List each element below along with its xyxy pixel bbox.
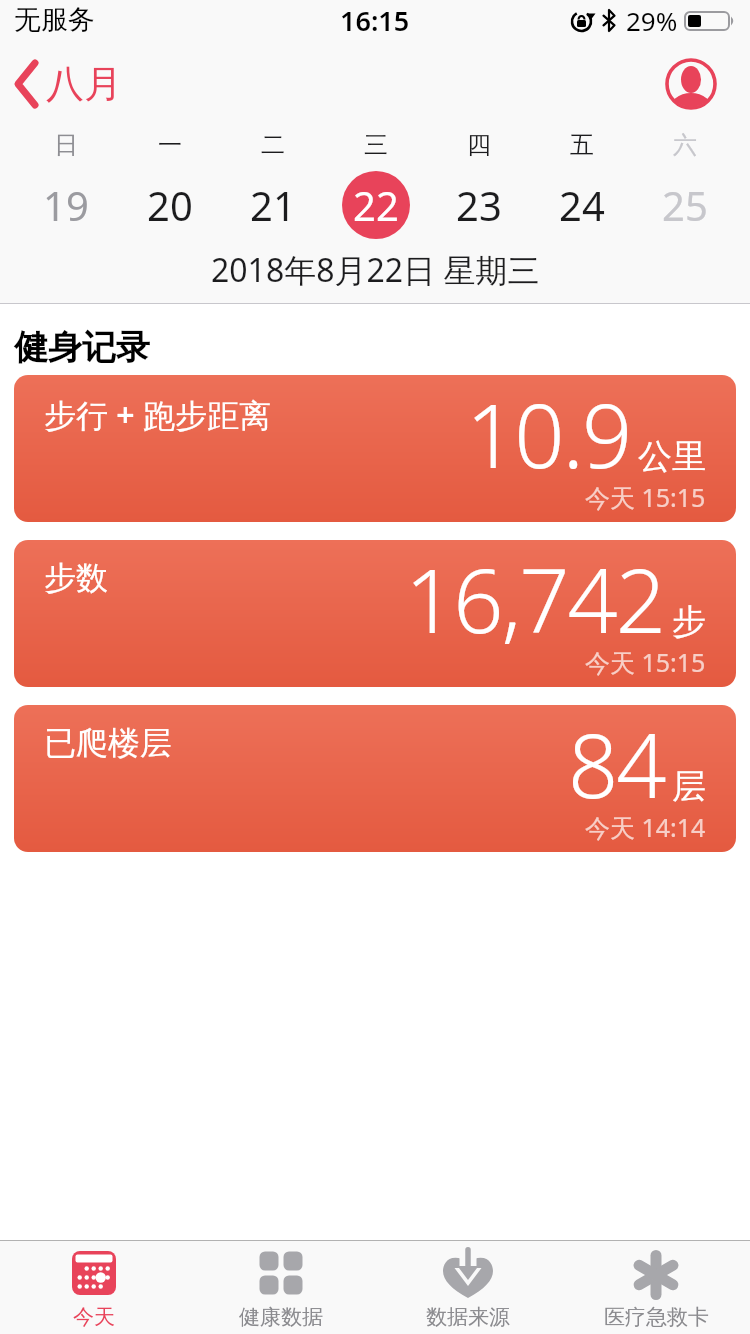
button[interactable]: 八月 <box>14 60 122 108</box>
staticText: 今天 15:15 <box>585 645 706 679</box>
staticText: 步行 + 跑步距离 <box>44 393 271 437</box>
staticText: 医疗急救卡 <box>604 1304 709 1330</box>
staticText: 三 <box>364 130 388 160</box>
staticText: 今天 15:15 <box>585 480 706 514</box>
staticText: 22 <box>353 178 399 232</box>
staticText: 二 <box>261 130 285 160</box>
staticText: 19 <box>43 178 89 232</box>
staticText: 今天 <box>73 1304 115 1330</box>
staticText: 16:15 <box>340 2 410 39</box>
staticText: 五 <box>570 130 594 160</box>
staticText: 健康数据 <box>239 1304 323 1330</box>
staticText: 一 <box>158 130 182 160</box>
staticText: 20 <box>147 178 193 232</box>
staticText: 已爬楼层 <box>44 723 172 763</box>
button[interactable]: 数据来源 <box>374 1241 562 1334</box>
staticText: 21 <box>250 178 296 232</box>
button[interactable]: 21 <box>239 171 307 239</box>
staticText: 16,742 <box>405 540 665 659</box>
staticText: 健身记录 <box>14 326 150 369</box>
button[interactable]: 健康数据 <box>187 1241 374 1334</box>
staticText: 84 <box>568 705 665 824</box>
staticText: 今天 14:14 <box>585 810 706 844</box>
button[interactable]: 24 <box>548 171 616 239</box>
button[interactable]: 医疗急救卡 <box>562 1241 750 1334</box>
staticText: 23 <box>456 178 502 232</box>
button[interactable]: 今天 <box>0 1241 187 1334</box>
staticText: 步数 <box>44 558 108 598</box>
staticText: 24 <box>559 178 605 232</box>
button[interactable]: 20 <box>136 171 204 239</box>
button[interactable]: 19 <box>32 171 100 239</box>
staticText: 日 <box>54 130 78 160</box>
staticText: 六 <box>673 130 697 160</box>
staticText: 公里 <box>638 435 706 478</box>
button[interactable]: 23 <box>445 171 513 239</box>
staticText: 无服务 <box>14 3 95 37</box>
button[interactable]: 步数 <box>14 540 736 687</box>
button[interactable]: 22 <box>342 171 410 239</box>
button[interactable]: 已爬楼层 <box>14 705 736 852</box>
staticText: 10.9 <box>466 375 631 494</box>
staticText: 层 <box>672 765 706 808</box>
staticText: 25 <box>662 178 708 232</box>
staticText: 2018年8月22日 星期三 <box>211 248 540 286</box>
staticText: 29% <box>626 3 678 38</box>
staticText: 数据来源 <box>426 1304 510 1330</box>
staticText: 四 <box>467 130 491 160</box>
staticText: 步 <box>672 600 706 643</box>
staticText: 八月 <box>46 60 122 108</box>
button[interactable] <box>665 58 717 110</box>
button[interactable]: 步行 + 跑步距离 <box>14 375 736 522</box>
button[interactable]: 25 <box>651 171 719 239</box>
